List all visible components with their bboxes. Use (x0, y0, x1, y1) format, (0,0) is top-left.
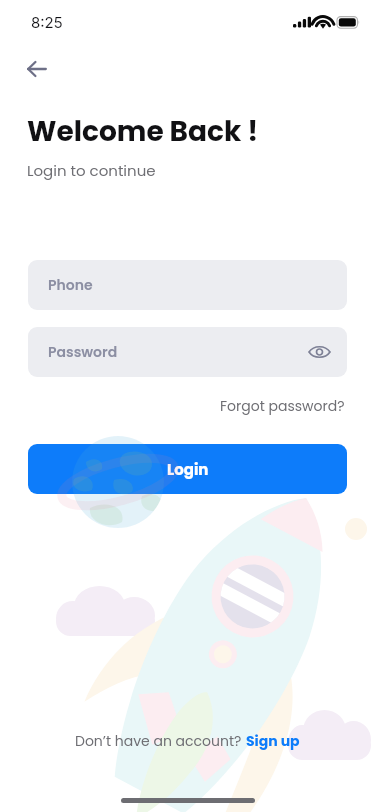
staticText: Password (48, 342, 118, 362)
button[interactable]: Back (15, 47, 59, 91)
button[interactable]: Show password (303, 336, 335, 368)
staticText: Phone (48, 275, 93, 295)
button[interactable]: Password (28, 327, 347, 377)
staticText: Welcome Back ! (27, 112, 259, 151)
button[interactable]: Login (28, 444, 347, 494)
button[interactable]: Sign up (246, 731, 300, 751)
staticText: Login to continue (27, 160, 156, 181)
staticText: Don’t have an account? (75, 731, 246, 751)
staticText: Sign up (246, 731, 300, 751)
button[interactable]: Phone (28, 260, 347, 310)
staticText: 8:25 (31, 13, 63, 31)
button[interactable]: Forgot password? (218, 394, 347, 418)
staticText: Forgot password? (220, 396, 345, 416)
staticText: Login (167, 459, 209, 480)
